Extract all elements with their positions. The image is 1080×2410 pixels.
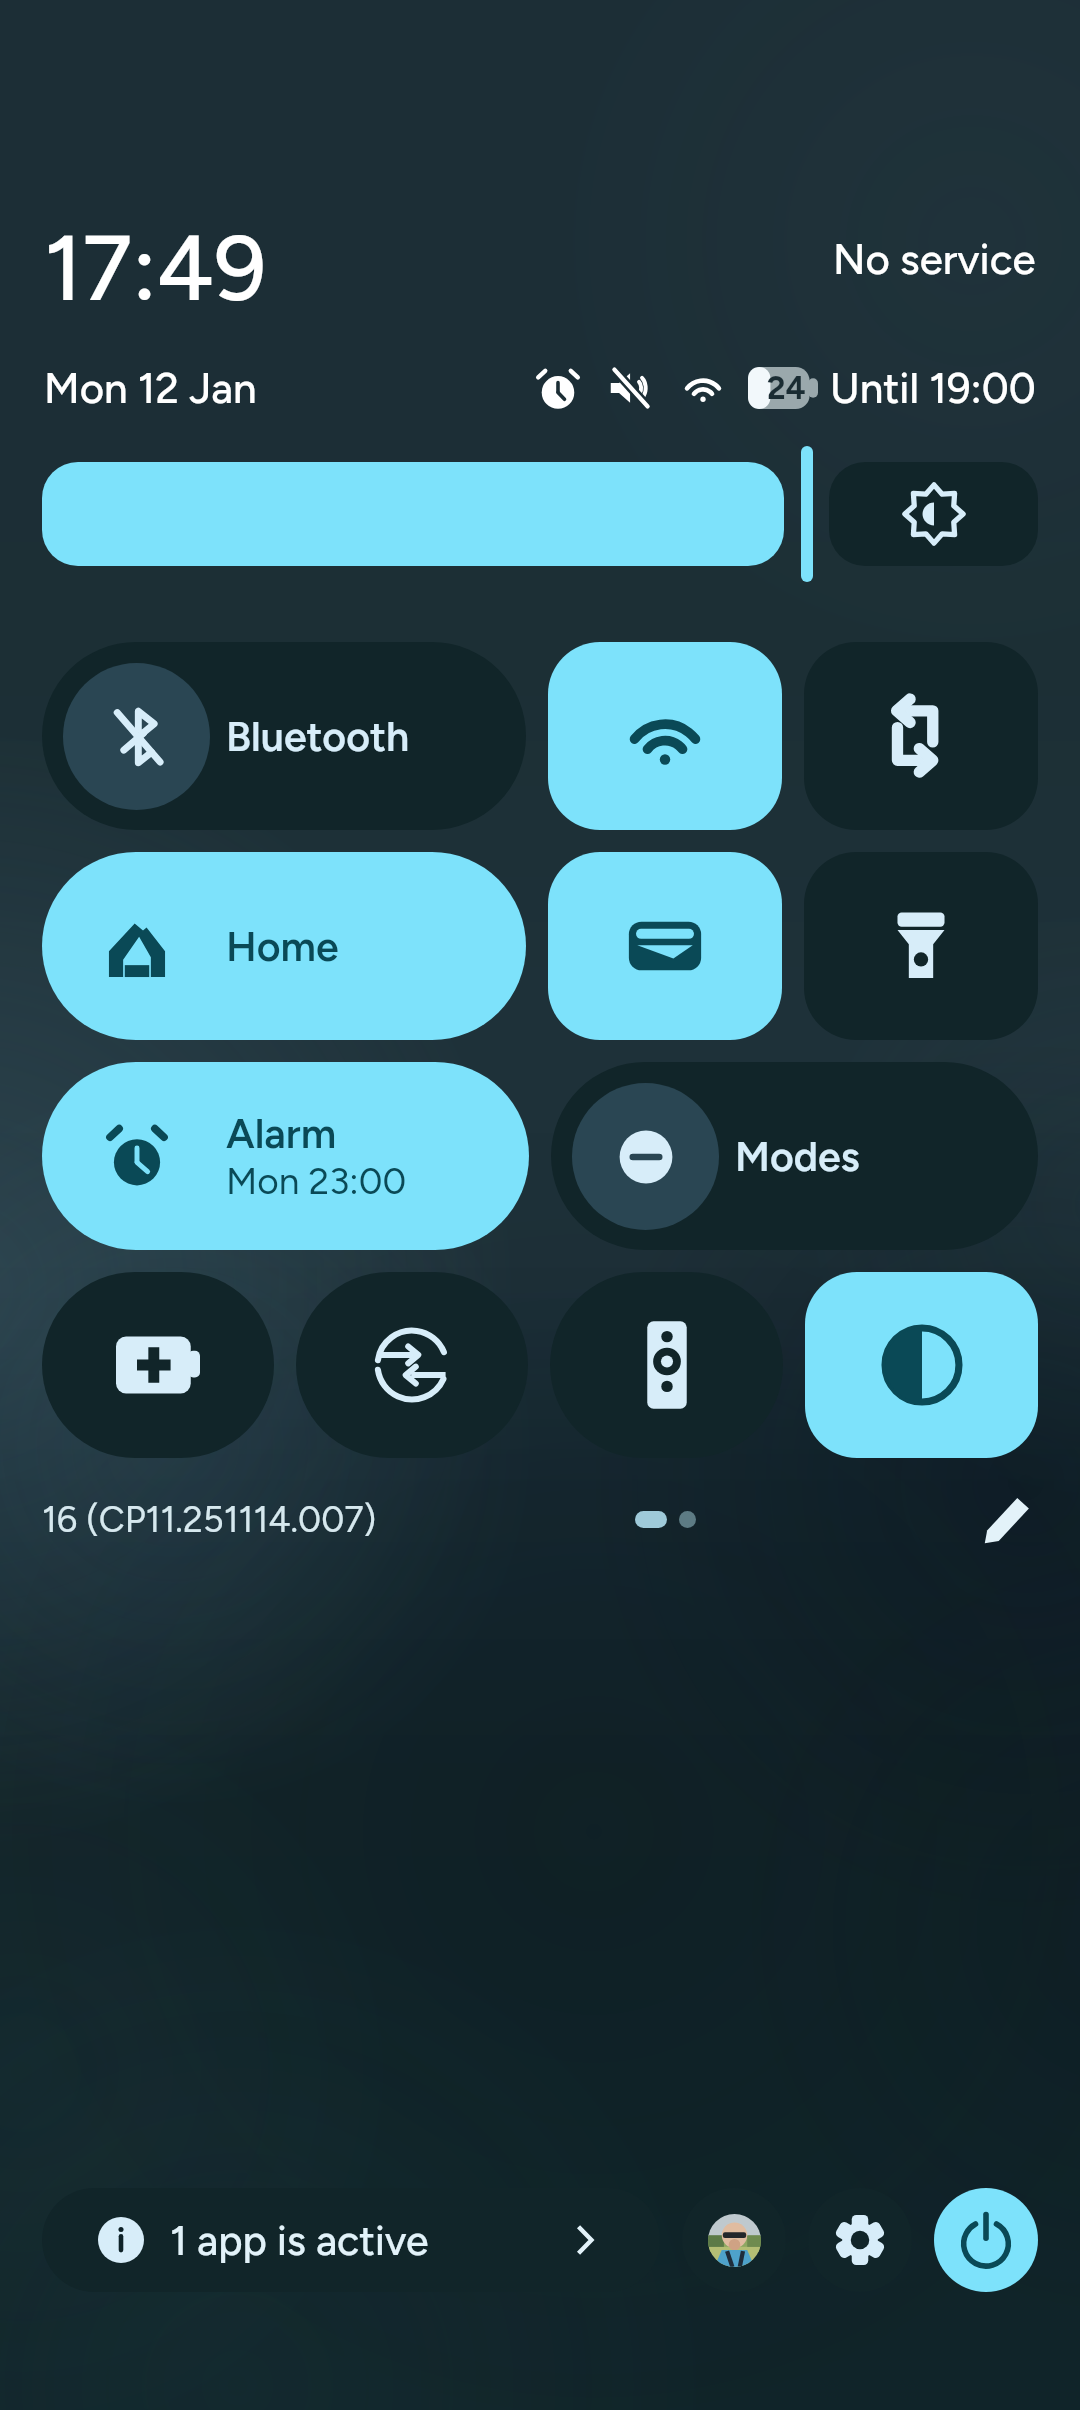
button[interactable]: User profile bbox=[682, 2188, 786, 2292]
staticText: Modes bbox=[735, 1132, 860, 1181]
button[interactable]: Bluetooth bbox=[42, 642, 526, 830]
button[interactable]: Home bbox=[42, 852, 526, 1040]
staticText: 16 (CP11.251114.007) bbox=[42, 1498, 377, 1541]
staticText: Alarm bbox=[226, 1109, 337, 1158]
button[interactable]: Settings bbox=[808, 2188, 912, 2292]
staticText: Mon 12 Jan bbox=[44, 363, 257, 413]
button[interactable]: Alarm bbox=[42, 1062, 529, 1250]
button[interactable]: Wallet bbox=[548, 852, 782, 1040]
staticText: 17:49 bbox=[44, 213, 267, 305]
staticText: Bluetooth bbox=[226, 712, 410, 761]
button[interactable]: Wi-Fi bbox=[548, 642, 782, 830]
button[interactable]: Dark theme bbox=[805, 1272, 1038, 1458]
staticText: Until 19:00 bbox=[830, 363, 1036, 413]
button[interactable]: Auto brightness bbox=[829, 462, 1038, 566]
button[interactable]: Data saver bbox=[296, 1272, 528, 1458]
staticText: Home bbox=[226, 922, 339, 971]
button[interactable]: Device controls bbox=[550, 1272, 783, 1458]
button[interactable]: Power button bbox=[934, 2188, 1038, 2292]
button[interactable]: Battery saver bbox=[42, 1272, 274, 1458]
staticText: No service bbox=[833, 234, 1036, 284]
staticText: 1 app is active bbox=[170, 2216, 429, 2265]
button[interactable]: Flashlight bbox=[804, 852, 1038, 1040]
button[interactable]: 1 app is active bbox=[42, 2188, 660, 2292]
button[interactable]: Modes bbox=[551, 1062, 1038, 1250]
button[interactable]: Brightness bbox=[42, 462, 784, 566]
staticText: 24 bbox=[767, 369, 806, 407]
button[interactable]: Edit tiles bbox=[978, 1489, 1038, 1549]
button[interactable]: Auto-rotate bbox=[804, 642, 1038, 830]
staticText: Mon 23:00 bbox=[226, 1159, 407, 1203]
